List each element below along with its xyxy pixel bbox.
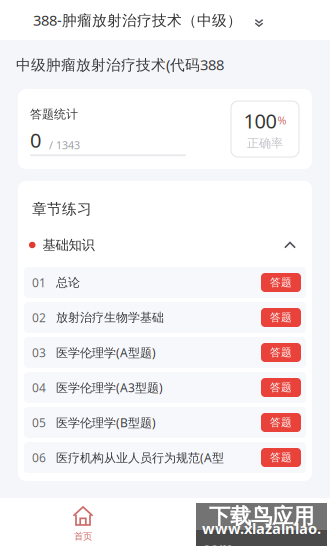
- staticText: 总论: [56, 275, 80, 290]
- staticText: 首页: [74, 531, 92, 542]
- staticText: 01: [32, 274, 46, 290]
- button[interactable]: 05: [24, 407, 306, 438]
- staticText: 100: [243, 107, 276, 134]
- staticText: 正确率: [247, 136, 283, 151]
- staticText: 05: [32, 414, 46, 430]
- staticText: 医学伦理学(A3型题): [56, 379, 163, 395]
- button[interactable]: 03: [24, 337, 306, 368]
- button[interactable]: 04: [24, 372, 306, 403]
- button[interactable]: 01: [24, 267, 306, 298]
- staticText: 答题: [270, 276, 292, 289]
- staticText: 医学伦理学(A型题): [56, 344, 156, 360]
- button[interactable]: 首页: [38, 498, 128, 550]
- staticText: 答题: [270, 311, 292, 324]
- staticText: 中级肿瘤放射治疗技术(代码388: [16, 55, 224, 74]
- staticText: 0: [30, 127, 41, 153]
- button[interactable]: 06: [24, 442, 306, 473]
- staticText: 答题统计: [30, 107, 78, 122]
- staticText: %: [277, 113, 286, 128]
- staticText: 下载鸟应用: [209, 503, 314, 530]
- staticText: 02: [32, 309, 46, 325]
- staticText: 放射治疗生物学基础: [56, 310, 164, 325]
- staticText: 388-肿瘤放射治疗技术（中级）: [33, 10, 242, 30]
- button[interactable]: 切换科目: [244, 8, 274, 38]
- staticText: 03: [32, 344, 46, 360]
- staticText: 答题: [270, 381, 292, 394]
- button[interactable]: 基础知识: [18, 228, 312, 267]
- staticText: 基础知识: [42, 237, 94, 253]
- staticText: 答题: [270, 416, 292, 429]
- staticText: 章节练习: [32, 200, 92, 218]
- staticText: www.xlazalnlao.com: [202, 518, 321, 550]
- staticText: 医学伦理学(B型题): [56, 414, 156, 430]
- staticText: 06: [32, 449, 46, 465]
- staticText: 答题: [270, 451, 292, 464]
- staticText: / 1343: [49, 138, 80, 152]
- staticText: 医疗机构从业人员行为规范(A型: [56, 449, 224, 465]
- button[interactable]: 02: [24, 302, 306, 333]
- staticText: 04: [32, 379, 46, 395]
- staticText: 答题: [270, 346, 292, 359]
